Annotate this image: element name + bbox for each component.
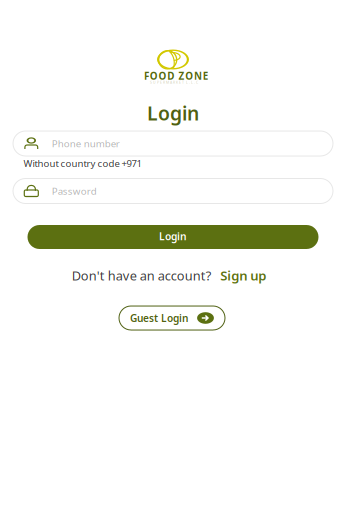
button[interactable]: Login bbox=[27, 225, 318, 249]
staticText: FOOD ZONE bbox=[144, 69, 209, 82]
staticText: Don't have an account? bbox=[72, 267, 212, 284]
staticText: S U P E R M A R K E T L . L . C bbox=[150, 80, 198, 85]
staticText: Phone number bbox=[52, 137, 120, 150]
staticText: Guest Login bbox=[130, 311, 188, 325]
button[interactable]: Sign up bbox=[220, 267, 266, 284]
staticText: Login bbox=[147, 100, 199, 126]
staticText: Sign up bbox=[220, 267, 266, 284]
staticText: Without country code +971 bbox=[23, 157, 141, 170]
button[interactable]: Guest Login bbox=[119, 306, 225, 330]
staticText: Login bbox=[159, 229, 187, 243]
staticText: Password bbox=[52, 184, 97, 198]
